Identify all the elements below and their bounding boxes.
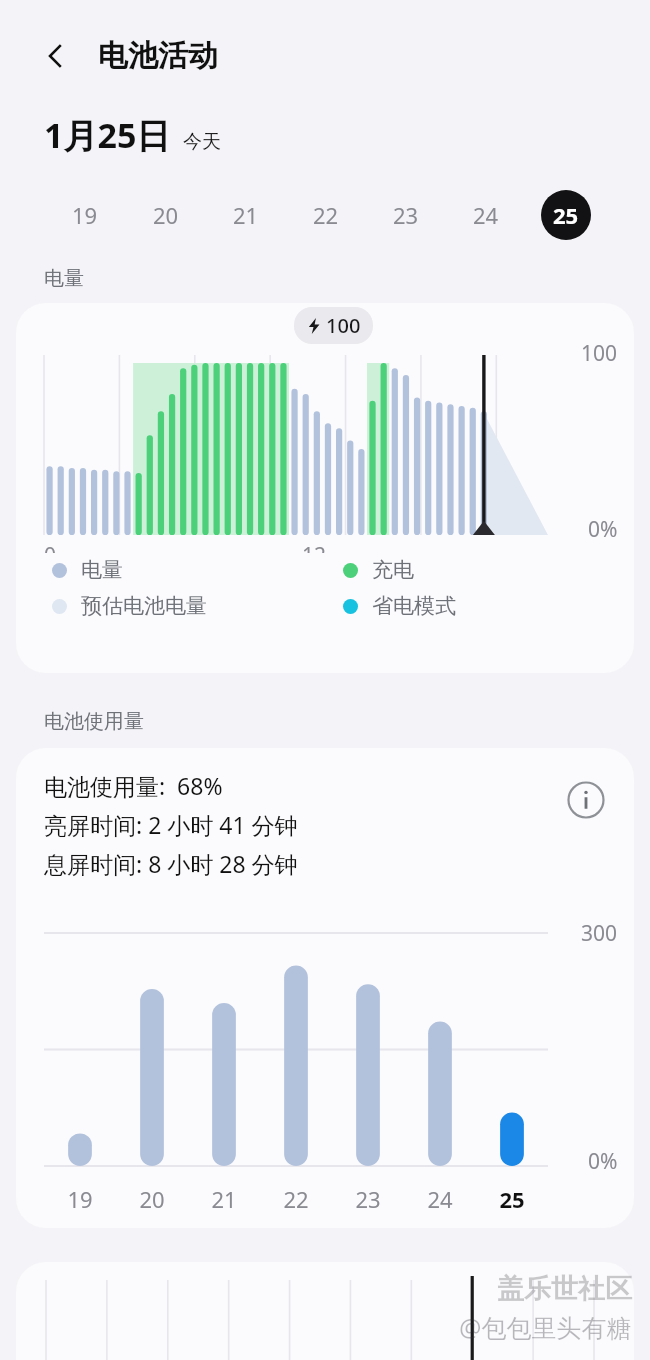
- staticText: 100: [326, 312, 361, 339]
- staticText: 23: [355, 1184, 381, 1214]
- button[interactable]: 19: [44, 186, 125, 244]
- button[interactable]: 电池使用量: 68%: [16, 748, 634, 1228]
- staticText: 21: [233, 200, 259, 230]
- button[interactable]: 100: [16, 303, 634, 673]
- button[interactable]: 23: [366, 186, 446, 244]
- staticText: 电量: [44, 266, 84, 291]
- staticText: @包包里头有糖: [459, 1310, 632, 1344]
- staticText: 今天: [183, 130, 221, 154]
- staticText: 0: [44, 541, 57, 553]
- staticText: 25: [499, 1184, 525, 1214]
- button[interactable]: 24: [446, 186, 526, 244]
- staticText: 1月25日: [44, 112, 171, 158]
- staticText: 24: [473, 200, 499, 230]
- staticText: 24: [427, 1184, 453, 1214]
- staticText: 预估电池电量: [81, 593, 207, 619]
- staticText: 电量: [81, 557, 123, 583]
- staticText: 23: [393, 200, 419, 230]
- staticText: 19: [72, 200, 98, 230]
- staticText: 电池活动: [98, 37, 218, 75]
- staticText: 0%: [588, 1147, 618, 1176]
- staticText: 25: [553, 200, 579, 230]
- staticText: 22: [313, 200, 339, 230]
- staticText: 充电: [372, 557, 414, 583]
- button[interactable]: 20: [125, 186, 206, 244]
- staticText: 19: [67, 1184, 93, 1214]
- staticText: 20: [139, 1184, 165, 1214]
- staticText: 12: [302, 541, 327, 553]
- button[interactable]: 25: [526, 186, 606, 244]
- staticText: 20: [153, 200, 179, 230]
- staticText: 22: [283, 1184, 309, 1214]
- staticText: 300: [581, 919, 618, 948]
- staticText: 盖乐世社区: [497, 1272, 632, 1306]
- staticText: 亮屏时间: 2 小时 41 分钟: [44, 809, 298, 840]
- button[interactable]: 21: [206, 186, 286, 244]
- button[interactable]: Info: [560, 774, 612, 826]
- button[interactable]: 22: [286, 186, 366, 244]
- staticText: 100: [581, 339, 618, 368]
- staticText: 省电模式: [372, 593, 456, 619]
- staticText: 电池使用量: 68%: [44, 770, 223, 801]
- staticText: 电池使用量: [44, 709, 144, 734]
- staticText: 21: [211, 1184, 237, 1214]
- staticText: 息屏时间: 8 小时 28 分钟: [44, 848, 298, 879]
- button[interactable]: Back: [30, 30, 82, 82]
- staticText: 0%: [588, 515, 618, 544]
